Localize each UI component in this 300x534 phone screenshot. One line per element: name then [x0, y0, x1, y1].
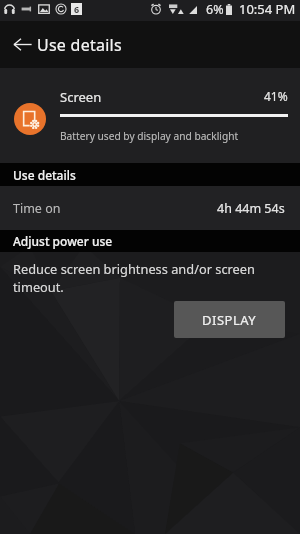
staticText: Battery used by display and backlight [60, 129, 239, 143]
staticText: 6% [206, 1, 224, 18]
staticText: 10:54 PM [239, 0, 296, 18]
staticText: Screen [60, 88, 102, 106]
staticText: 4h 44m 54s [217, 200, 285, 217]
staticText: Reduce screen brightness and/or screen t… [13, 260, 258, 296]
button[interactable]: DISPLAY [174, 301, 285, 338]
staticText: Use details [37, 34, 122, 56]
button[interactable]: Back [10, 21, 34, 68]
staticText: 41% [264, 88, 288, 104]
button[interactable]: Time on [0, 186, 300, 230]
staticText: DISPLAY [202, 311, 257, 329]
staticText: 6 [74, 3, 80, 15]
staticText: Use details [13, 167, 76, 183]
staticText: Time on [13, 200, 61, 217]
staticText: Adjust power use [13, 233, 113, 249]
